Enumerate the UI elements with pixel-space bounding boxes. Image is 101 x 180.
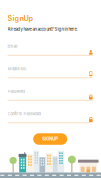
staticText: Password	[8, 89, 25, 94]
button[interactable]: SIGNUP	[33, 133, 67, 145]
button[interactable]: Password	[8, 89, 93, 101]
button[interactable]: Mobile No.	[8, 66, 93, 78]
button[interactable]: Confirm Password	[8, 111, 93, 123]
staticText: SignUp	[8, 14, 33, 23]
staticText: Email	[8, 44, 18, 49]
staticText: Confirm Password	[8, 111, 41, 116]
staticText: Already have an account? Sign in here.	[8, 27, 78, 32]
staticText: SIGNUP	[42, 136, 58, 142]
staticText: Mobile No.	[8, 66, 27, 71]
button[interactable]: Email	[8, 44, 93, 56]
